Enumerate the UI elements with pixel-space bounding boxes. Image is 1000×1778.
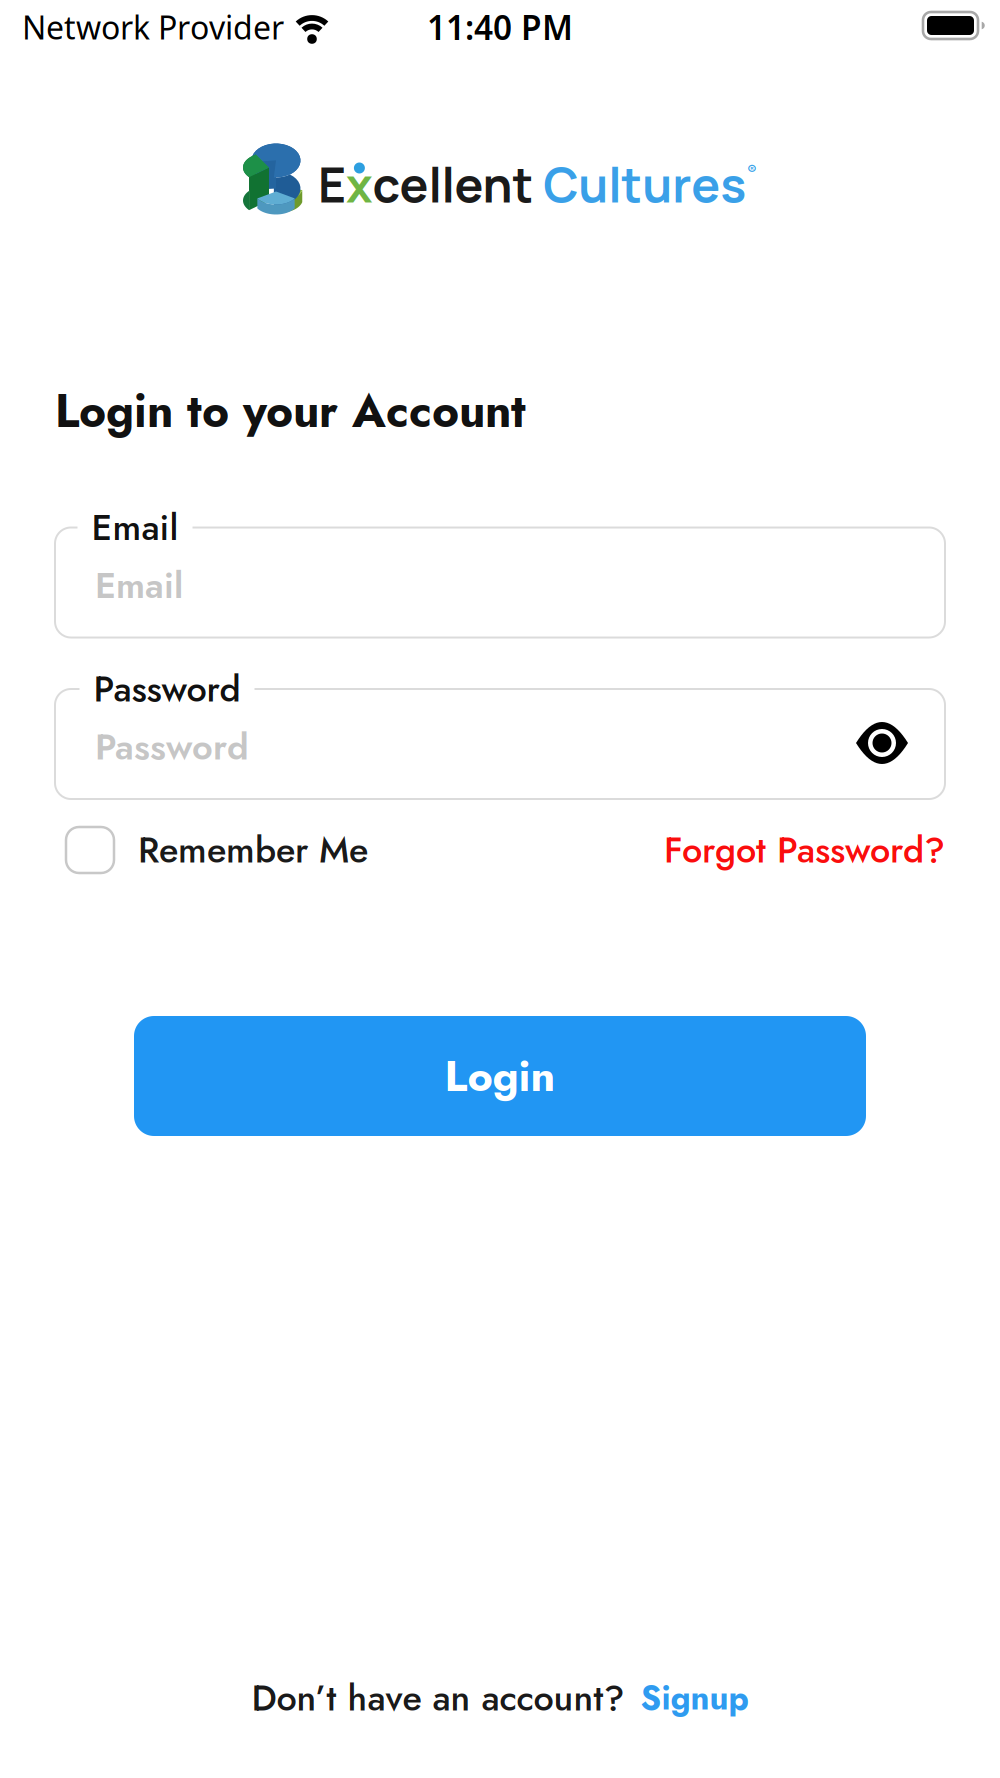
staticText: 11:40 PM [427,5,573,49]
staticText: Network Provider [22,6,284,48]
button[interactable]: Password [0,669,1000,839]
staticText: Password [93,663,240,715]
staticText: Cultures [543,151,746,217]
button[interactable]: Login [134,1016,866,1136]
staticText: Signup [640,1674,748,1722]
staticText: Login [444,1045,555,1107]
button[interactable]: Email [0,507,1000,677]
staticText: Forgot Password? [664,824,945,876]
staticText: E [318,151,346,217]
staticText: Email [95,559,183,611]
staticText: Don’t have an account? [251,1672,624,1724]
staticText: cellent [372,151,533,217]
staticText: Email [91,501,178,553]
button[interactable]: Signup [640,1674,748,1722]
button[interactable]: Forgot Password? [495,824,945,876]
staticText: Remember Me [138,824,368,876]
staticText: ® [747,160,757,180]
button[interactable]: Remember Me [66,824,368,876]
staticText: Login to your Account [55,378,526,444]
button[interactable] [856,721,908,765]
staticText: Password [95,721,249,773]
staticText: x [346,151,373,217]
